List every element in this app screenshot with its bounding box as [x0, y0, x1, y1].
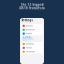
staticText: iOS 18 features to [19, 6, 45, 10]
button[interactable] [21, 42, 43, 46]
button[interactable] [21, 46, 43, 50]
button[interactable]: Continue [21, 38, 34, 40]
staticText: Continue [23, 35, 32, 42]
button[interactable] [21, 24, 43, 28]
button[interactable] [21, 50, 43, 54]
button[interactable] [21, 28, 43, 32]
staticText: The 12 biggest [20, 3, 43, 6]
button[interactable] [21, 32, 43, 36]
staticText: Settings [21, 18, 32, 22]
